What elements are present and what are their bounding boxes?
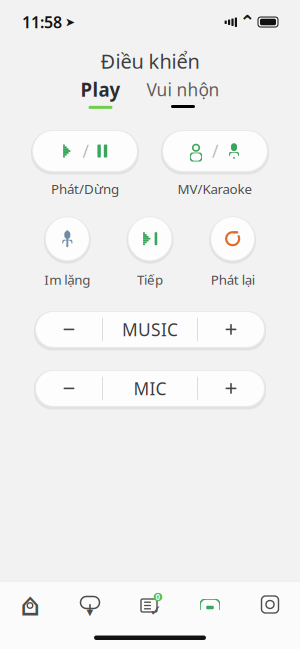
button[interactable]: Control [180,581,240,627]
staticText: ▾ [86,604,93,619]
button[interactable]: MIC [103,371,197,406]
staticText: Điều khiển [100,48,199,74]
staticText: Play [80,77,120,102]
button[interactable]: Increase MIC [198,371,264,406]
button[interactable]: Phát lại [191,214,274,288]
staticText: MIC [133,377,166,400]
staticText: 0 [155,592,160,602]
button[interactable]: Im lặng [26,214,109,288]
staticText: / [212,139,218,162]
staticText: ✓ [149,602,161,619]
staticText: MV/Karaoke [177,180,252,198]
staticText: ⌃ [239,11,255,33]
button[interactable]: MUSIC [103,312,197,347]
staticText: Tiếp [137,271,163,288]
staticText: ➤ [65,15,75,29]
button[interactable]: Download [60,581,120,627]
button[interactable]: Decrease MIC [36,371,102,406]
button[interactable]: Tiếp [109,214,191,288]
staticText: Phát/Dừng [51,180,119,198]
button[interactable]: Playlist [120,581,180,627]
button[interactable]: Play [76,77,124,109]
staticText: Phát lại [211,271,255,288]
staticText: ⌂ [20,586,40,623]
button[interactable]: Settings [240,581,300,627]
staticText: / [82,139,88,162]
button[interactable]: Vui nhộn [142,78,223,108]
button[interactable]: Increase MUSIC [198,312,264,347]
button[interactable]: / [30,128,140,198]
staticText: 11:58 [22,11,62,33]
staticText: Im lặng [44,271,90,288]
button[interactable]: / [160,128,270,198]
button[interactable]: Home [0,581,60,627]
staticText: MUSIC [122,318,178,341]
button[interactable]: Decrease MUSIC [36,312,102,347]
staticText: Vui nhộn [146,78,219,101]
